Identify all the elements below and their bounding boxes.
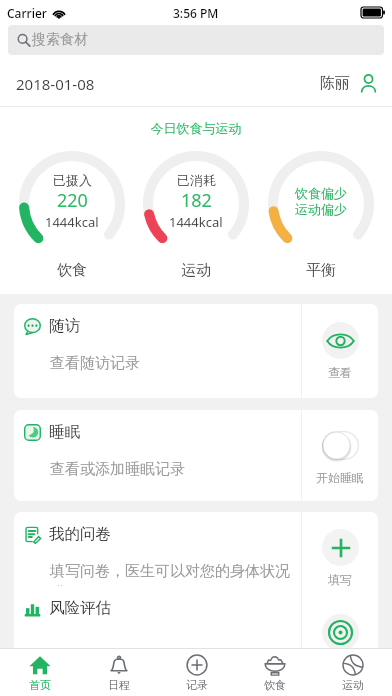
button[interactable]: 饮食 [236, 649, 314, 696]
button[interactable]: 开始睡眠 [302, 410, 378, 501]
staticText: 搜索食材 [32, 31, 88, 49]
staticText: 运动 [181, 261, 211, 280]
staticText: 日程 [108, 678, 130, 692]
button[interactable]: 陈丽 [320, 74, 378, 93]
staticText: 220 [57, 188, 88, 213]
staticText: 今日饮食与运动 [0, 120, 392, 136]
staticText: 开始睡眠 [316, 470, 364, 485]
staticText: 182 [181, 188, 212, 213]
staticText: 已摄入 [53, 172, 92, 188]
staticText: 饮食偏少 [295, 185, 347, 201]
other: 评估 [322, 614, 359, 648]
staticText: 睡眠 [49, 422, 80, 442]
staticText: 平衡 [306, 261, 336, 280]
other: 填写 [322, 529, 359, 566]
staticText: 3:56 PM [173, 5, 219, 21]
button[interactable]: 记录 [158, 649, 236, 696]
staticText: 填写问卷，医生可以对您的身体状况 进行评估 [50, 562, 290, 602]
staticText: 运动偏少 [295, 201, 347, 217]
button[interactable]: 睡眠 [14, 410, 378, 501]
staticText: 已消耗 [177, 172, 216, 188]
staticText: 1444kcal [169, 213, 223, 231]
staticText: 陈丽 [320, 74, 350, 93]
other: 用户 [359, 74, 378, 93]
staticText: 风险评估 [49, 598, 111, 618]
staticText: 饮食 [264, 678, 286, 692]
button[interactable]: 日程 [79, 649, 158, 696]
staticText: 1444kcal [45, 213, 99, 231]
staticText: 填写 [328, 572, 352, 587]
staticText: Carrier [7, 5, 47, 21]
staticText: 查看随访记录 [50, 354, 140, 373]
button[interactable]: 填写 [302, 512, 378, 604]
staticText: 饮食 [57, 261, 87, 280]
other: 开始睡眠 [322, 427, 359, 464]
staticText: 查看或添加睡眠记录 [50, 460, 185, 479]
staticText: 我的问卷 [49, 524, 111, 544]
staticText: 运动 [342, 678, 364, 692]
button[interactable]: 我的问卷 [14, 512, 378, 604]
button[interactable]: 首页 [0, 649, 79, 696]
staticText: 随访 [49, 316, 80, 336]
staticText: 记录 [186, 678, 208, 692]
button[interactable]: 随访 [14, 304, 378, 398]
staticText: 2018-01-08 [16, 74, 95, 94]
staticText: 查看 [328, 365, 352, 380]
button[interactable]: 评估 [302, 586, 378, 648]
button[interactable]: 风险评估 [14, 586, 378, 648]
button[interactable]: 运动 [314, 649, 392, 696]
other: 查看 [322, 322, 359, 359]
staticText: 首页 [29, 678, 51, 692]
button[interactable]: 搜索食材 [8, 25, 384, 55]
button[interactable]: 查看 [302, 304, 378, 398]
